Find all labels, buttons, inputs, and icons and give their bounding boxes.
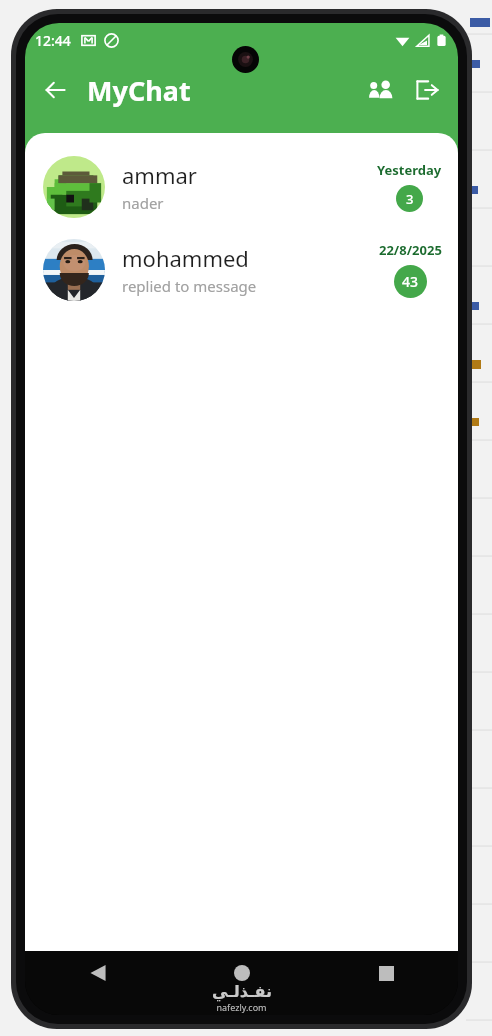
staticText: ammar bbox=[122, 160, 197, 190]
staticText: MyChat bbox=[87, 72, 191, 109]
button[interactable]: mohammed bbox=[25, 228, 458, 311]
button[interactable]: Back bbox=[33, 68, 77, 112]
staticText: replied to message bbox=[122, 276, 257, 296]
staticText: 43 bbox=[402, 272, 419, 291]
staticText: 22/8/2025 bbox=[379, 241, 442, 259]
staticText: 3 bbox=[406, 190, 414, 208]
staticText: nader bbox=[122, 193, 164, 213]
staticText: mohammed bbox=[122, 243, 249, 273]
staticText: 12:44 bbox=[35, 31, 71, 50]
button[interactable]: Home bbox=[170, 951, 314, 995]
button[interactable]: ammar bbox=[25, 145, 458, 228]
staticText: نفـذلـي bbox=[212, 982, 272, 1001]
button[interactable]: Contacts bbox=[358, 67, 404, 113]
button[interactable]: Log out bbox=[404, 67, 450, 113]
staticText: nafezly.com bbox=[216, 1001, 267, 1013]
button[interactable]: Back bbox=[25, 951, 170, 995]
staticText: Yesterday bbox=[377, 161, 442, 179]
button[interactable]: Recent apps bbox=[314, 951, 458, 995]
